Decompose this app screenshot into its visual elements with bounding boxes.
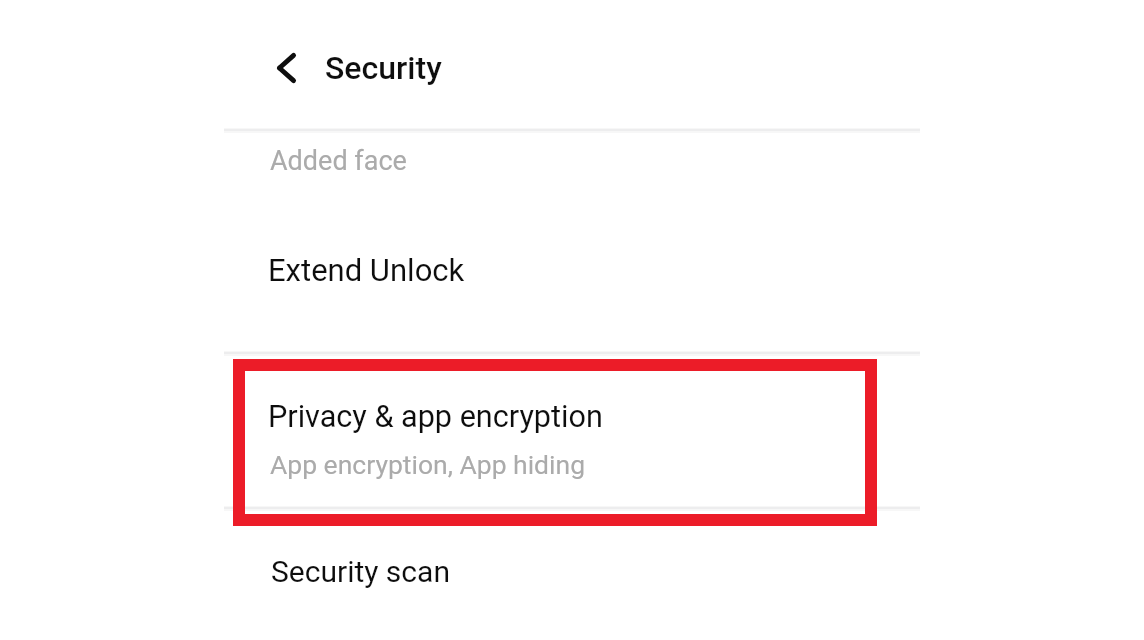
staticText: Added face (270, 145, 407, 177)
staticText: Security scan (271, 554, 450, 589)
button[interactable]: Navigate up (258, 40, 314, 96)
staticText: Security (325, 49, 442, 87)
staticText: Extend Unlock (268, 252, 465, 288)
button[interactable]: Privacy & app encryption (224, 355, 920, 507)
button[interactable]: Extend Unlock (224, 240, 920, 352)
staticText: Privacy & app encryption (268, 399, 603, 435)
button[interactable]: Security scan (224, 510, 920, 636)
button[interactable]: Added face (224, 132, 920, 240)
staticText: App encryption, App hiding (270, 449, 586, 480)
